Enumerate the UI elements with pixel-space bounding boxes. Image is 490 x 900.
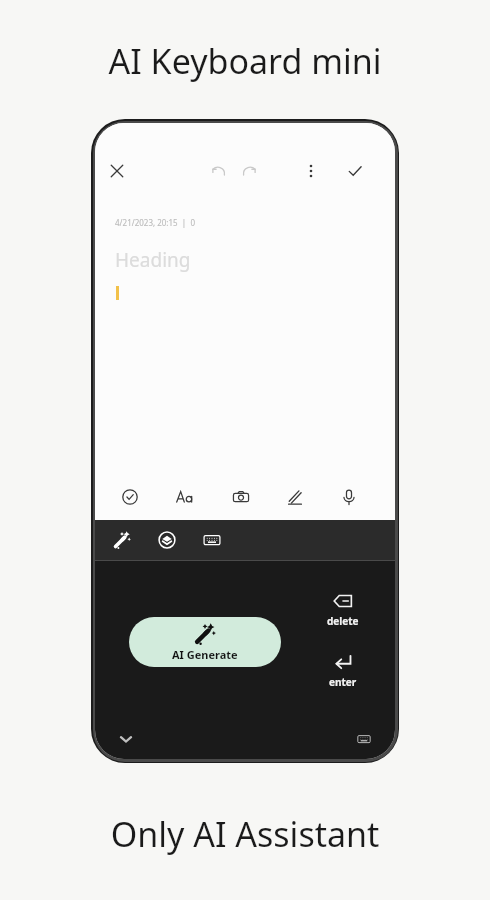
button[interactable]: enter bbox=[317, 651, 369, 697]
staticText: enter bbox=[329, 675, 357, 689]
button[interactable]: delete bbox=[317, 590, 369, 636]
button[interactable]: AI Generate bbox=[129, 617, 281, 667]
button[interactable]: More options bbox=[298, 158, 324, 184]
staticText: Heading bbox=[115, 247, 191, 273]
button[interactable]: Keyboard bbox=[199, 527, 225, 553]
button[interactable]: Close bbox=[104, 158, 130, 184]
staticText: AI Keyboard mini bbox=[0, 38, 490, 84]
button[interactable]: Checklist bbox=[117, 484, 143, 510]
button[interactable]: Switch keyboard bbox=[357, 732, 371, 746]
button[interactable]: Camera bbox=[228, 484, 254, 510]
button[interactable]: Voice bbox=[336, 484, 362, 510]
staticText: Only AI Assistant bbox=[0, 811, 490, 857]
button[interactable]: Undo bbox=[206, 158, 232, 184]
button[interactable]: Redo bbox=[236, 158, 262, 184]
button[interactable]: Layers bbox=[154, 527, 180, 553]
staticText: 4/21/2023, 20:15 | 0 bbox=[115, 217, 195, 228]
staticText: delete bbox=[327, 614, 359, 628]
button[interactable]: Draw bbox=[282, 484, 308, 510]
button[interactable]: Text style bbox=[172, 484, 198, 510]
button[interactable]: Hide keyboard bbox=[117, 730, 135, 748]
button[interactable]: Save bbox=[342, 158, 368, 184]
button[interactable]: AI tools bbox=[109, 527, 135, 553]
staticText: AI Generate bbox=[172, 647, 238, 662]
